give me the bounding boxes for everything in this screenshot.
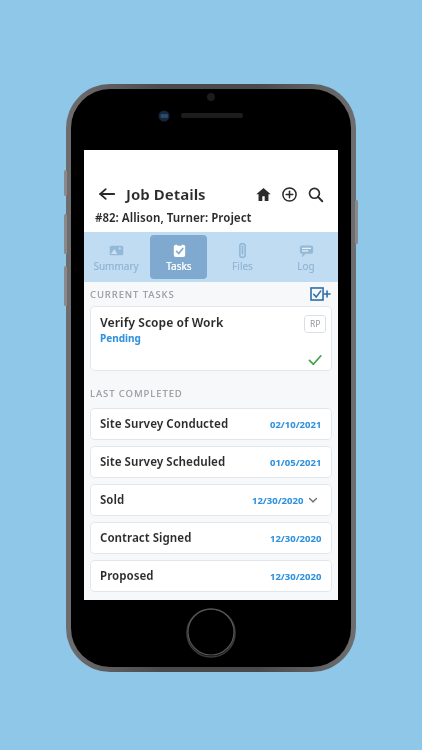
staticText: Site Survey Conducted	[100, 416, 229, 432]
staticText: 01/05/2021	[270, 456, 322, 469]
button[interactable]: Back	[94, 181, 120, 207]
staticText: #82: Allison, Turner: Project	[95, 210, 252, 226]
staticText: Job Details	[126, 184, 206, 204]
staticText: 12/30/2020	[270, 570, 322, 583]
button[interactable]: Log	[277, 235, 335, 279]
button[interactable]: Add task	[310, 286, 332, 302]
staticText: LAST COMPLETED	[90, 387, 183, 400]
button[interactable]: Home	[250, 181, 276, 207]
button[interactable]: Sold	[90, 484, 332, 516]
staticText: Log	[297, 259, 315, 273]
button[interactable]: Proposed	[90, 560, 332, 592]
button[interactable]: Site Survey Scheduled	[90, 446, 332, 478]
button[interactable]: Files	[213, 235, 271, 279]
staticText: 02/10/2021	[270, 418, 322, 431]
staticText: 12/30/2020	[270, 532, 322, 545]
button[interactable]: Contract Signed	[90, 522, 332, 554]
button[interactable]: Verify Scope of Work	[90, 306, 332, 371]
button[interactable]: Add	[276, 181, 302, 207]
button[interactable]: Tasks	[150, 235, 207, 279]
staticText: Files	[232, 259, 253, 273]
button[interactable]: Summary	[87, 235, 144, 279]
button[interactable]: Site Survey Conducted	[90, 408, 332, 440]
staticText: Site Survey Scheduled	[100, 454, 226, 470]
staticText: 12/30/2020	[252, 494, 304, 507]
staticText: Pending	[100, 331, 141, 345]
button[interactable]: Complete task	[303, 348, 327, 371]
staticText: Proposed	[100, 568, 154, 584]
button[interactable]: Search	[302, 181, 328, 207]
staticText: Contract Signed	[100, 530, 192, 546]
staticText: Tasks	[166, 259, 192, 273]
staticText: Verify Scope of Work	[100, 314, 224, 330]
staticText: RP	[310, 318, 321, 330]
staticText: CURRENT TASKS	[90, 288, 175, 301]
staticText: Summary	[93, 259, 139, 273]
staticText: Sold	[100, 492, 125, 508]
